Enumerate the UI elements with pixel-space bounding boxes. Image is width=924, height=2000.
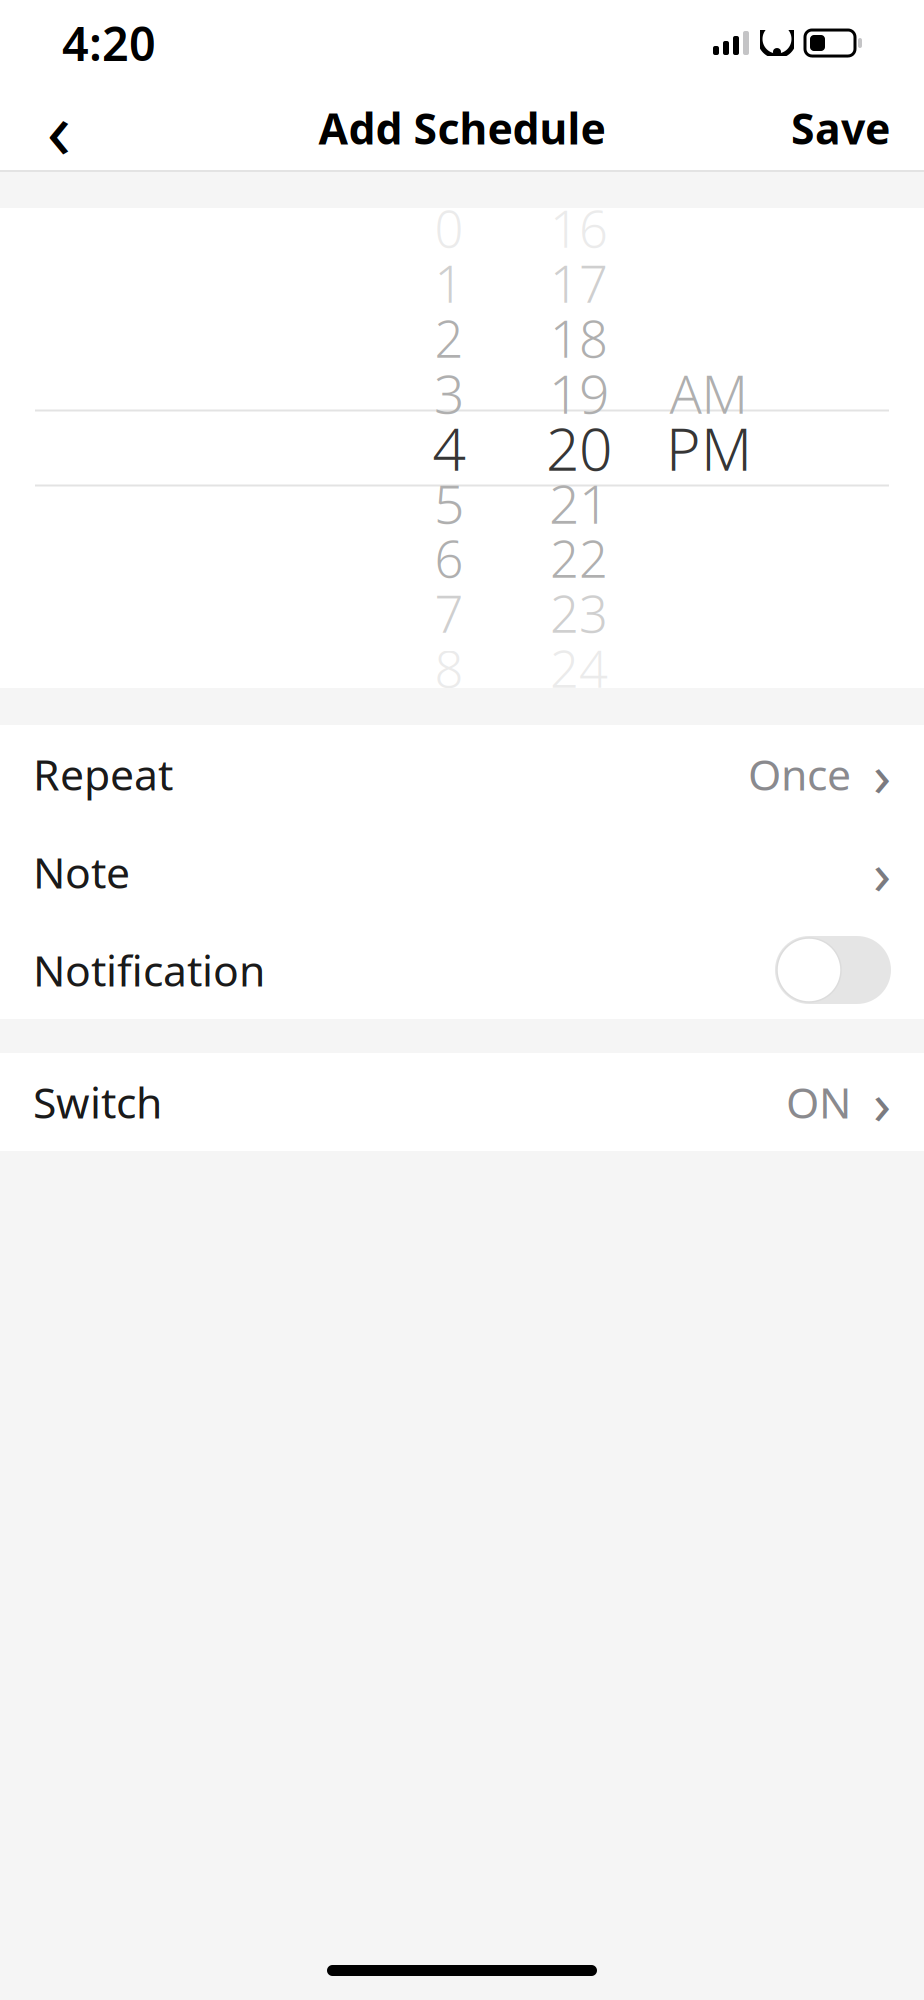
staticText: Once (748, 746, 851, 802)
staticText: Repeat (33, 746, 173, 802)
staticText: › (873, 735, 891, 813)
button[interactable]: Save (781, 89, 900, 167)
staticText: 23 (550, 579, 608, 647)
staticText: 5 (434, 468, 464, 538)
staticText: 24 (550, 634, 608, 702)
staticText: ‹ (46, 75, 71, 181)
staticText: › (873, 833, 891, 911)
staticText: Switch (33, 1074, 162, 1130)
staticText: 21 (549, 468, 609, 538)
staticText: 7 (434, 579, 463, 647)
button[interactable]: Repeat (0, 725, 924, 823)
button[interactable]: Back (24, 89, 94, 167)
staticText: AM (669, 358, 748, 428)
staticText: Notification (33, 942, 265, 998)
staticText: 3 (434, 358, 464, 428)
staticText: 0 (434, 194, 463, 262)
staticText: 20 (546, 409, 612, 487)
staticText: 1 (434, 249, 463, 317)
staticText: › (873, 1063, 891, 1141)
staticText: 22 (550, 524, 608, 592)
staticText: 6 (434, 524, 463, 592)
staticText: Save (791, 100, 890, 156)
staticText: Note (33, 844, 130, 900)
staticText: ON (786, 1074, 851, 1130)
staticText: 2 (434, 304, 463, 372)
staticText: 18 (550, 304, 608, 372)
staticText: 8 (434, 634, 463, 702)
staticText: PM (666, 409, 752, 487)
staticText: 19 (549, 358, 609, 428)
staticText: 4 (432, 409, 465, 487)
button[interactable]: Notification (0, 921, 924, 1019)
staticText: 16 (550, 194, 608, 262)
button[interactable]: Note (0, 823, 924, 921)
staticText: Add Schedule (318, 100, 605, 156)
button[interactable]: Switch (0, 1053, 924, 1151)
staticText: 4:20 (62, 12, 156, 74)
staticText: 17 (550, 249, 608, 317)
